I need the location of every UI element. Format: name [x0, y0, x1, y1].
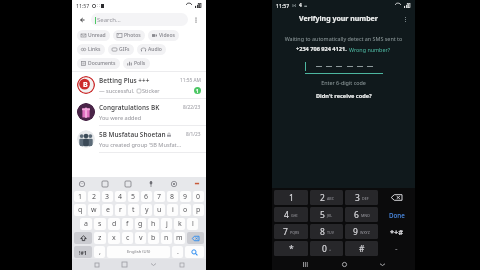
button[interactable]: Home	[120, 260, 129, 269]
button[interactable]: Links	[77, 44, 105, 55]
button[interactable]: 6	[345, 207, 378, 222]
button[interactable]: Search…	[91, 13, 188, 26]
button[interactable]: Photos	[113, 30, 145, 41]
button[interactable]: Done	[380, 207, 413, 222]
button[interactable]: 3	[345, 190, 378, 205]
button[interactable]: Audio	[137, 44, 166, 55]
button[interactable]: More options	[401, 15, 410, 24]
button[interactable]: *	[274, 241, 308, 256]
button[interactable]: Back	[77, 14, 88, 25]
button[interactable]: Text	[123, 179, 132, 188]
button[interactable]: Dash	[380, 241, 413, 256]
button[interactable]: Search	[185, 246, 204, 258]
button[interactable]: y	[141, 204, 152, 216]
staticText: 7	[283, 226, 288, 238]
button[interactable]: k	[174, 218, 185, 230]
button[interactable]: h	[148, 218, 159, 230]
button[interactable]: 7	[274, 224, 308, 239]
button[interactable]: Videos	[148, 30, 179, 41]
button[interactable]: 9	[180, 191, 191, 202]
button[interactable]: t	[128, 204, 139, 216]
button[interactable]: #	[345, 241, 378, 256]
button[interactable]: More options	[191, 15, 201, 25]
button[interactable]: 2	[310, 190, 343, 205]
button[interactable]: d	[108, 218, 120, 230]
button[interactable]: Keyboard settings	[177, 260, 186, 269]
button[interactable]: Home	[339, 259, 349, 269]
button[interactable]: English (US)	[107, 246, 170, 258]
button[interactable]: Didn't receive code?	[272, 92, 415, 100]
button[interactable]: Wrong number?	[349, 46, 391, 53]
button[interactable]: 0	[310, 241, 343, 256]
button[interactable]: n	[161, 232, 172, 244]
button[interactable]: 2	[88, 191, 100, 202]
staticText: 3	[355, 192, 360, 204]
button[interactable]: Congratulations BK	[72, 99, 206, 126]
staticText: d	[112, 219, 117, 229]
button[interactable]: x	[108, 232, 120, 244]
button[interactable]: m	[174, 232, 185, 244]
button[interactable]: Shift	[74, 232, 92, 244]
button[interactable]: 9	[345, 224, 378, 239]
button[interactable]: 1	[74, 191, 86, 202]
button[interactable]: Hide keyboard	[377, 259, 387, 269]
button[interactable]: v	[135, 232, 146, 244]
button[interactable]: r	[115, 204, 126, 216]
button[interactable]: Recents	[92, 260, 101, 269]
button[interactable]: Hide	[192, 179, 201, 188]
button[interactable]: Emoji	[77, 179, 86, 188]
button[interactable]: Unread	[77, 30, 110, 41]
button[interactable]: i	[167, 204, 178, 216]
button[interactable]: c	[122, 232, 133, 244]
button[interactable]: 8	[310, 224, 343, 239]
button[interactable]: 7	[154, 191, 165, 202]
button[interactable]: z	[94, 232, 106, 244]
button[interactable]: o	[180, 204, 191, 216]
button[interactable]: a	[80, 218, 92, 230]
button[interactable]: Voice	[146, 179, 155, 188]
button[interactable]: Polls	[123, 58, 150, 69]
staticText: Didn't receive code?	[316, 92, 372, 100]
button[interactable]: w	[88, 204, 100, 216]
button[interactable]: 5	[128, 191, 139, 202]
button[interactable]: g	[135, 218, 146, 230]
button[interactable]: 5B Musfatau Shoetan	[72, 126, 206, 153]
button[interactable]: j	[161, 218, 172, 230]
button[interactable]: B	[72, 72, 206, 99]
button[interactable]: Documents	[77, 58, 120, 69]
button[interactable]: *+#	[380, 224, 413, 239]
button[interactable]: Backspace	[187, 232, 204, 244]
button[interactable]: Backspace	[380, 190, 413, 205]
staticText: 1	[196, 88, 199, 94]
button[interactable]: ,	[94, 246, 105, 258]
button[interactable]: Recents	[300, 259, 310, 269]
button[interactable]: Settings	[169, 179, 178, 188]
button[interactable]: 4	[274, 207, 308, 222]
button[interactable]: 6	[141, 191, 152, 202]
button[interactable]: 3	[102, 191, 113, 202]
button[interactable]: Clipboard	[100, 179, 109, 188]
button[interactable]: .	[172, 246, 183, 258]
staticText: 0	[322, 243, 327, 255]
staticText: Done	[389, 211, 405, 219]
staticText: g	[138, 219, 143, 229]
button[interactable]: f	[122, 218, 133, 230]
button[interactable]: GIFs	[108, 44, 134, 55]
staticText: WXYZ	[360, 230, 370, 235]
staticText: Congratulations BK	[99, 103, 160, 112]
button[interactable]: 8	[167, 191, 178, 202]
button[interactable]: 5	[310, 207, 343, 222]
button[interactable]: !#1	[74, 246, 92, 258]
button[interactable]: b	[148, 232, 159, 244]
button[interactable]: 4	[115, 191, 126, 202]
button[interactable]: e	[102, 204, 113, 216]
staticText: i	[172, 205, 174, 215]
button[interactable]: l	[187, 218, 198, 230]
button[interactable]: s	[94, 218, 106, 230]
button[interactable]: u	[154, 204, 165, 216]
button[interactable]: 0	[193, 191, 204, 202]
button[interactable]: 1	[274, 190, 308, 205]
button[interactable]: Back	[149, 260, 158, 269]
button[interactable]: q	[74, 204, 86, 216]
button[interactable]: p	[193, 204, 204, 216]
